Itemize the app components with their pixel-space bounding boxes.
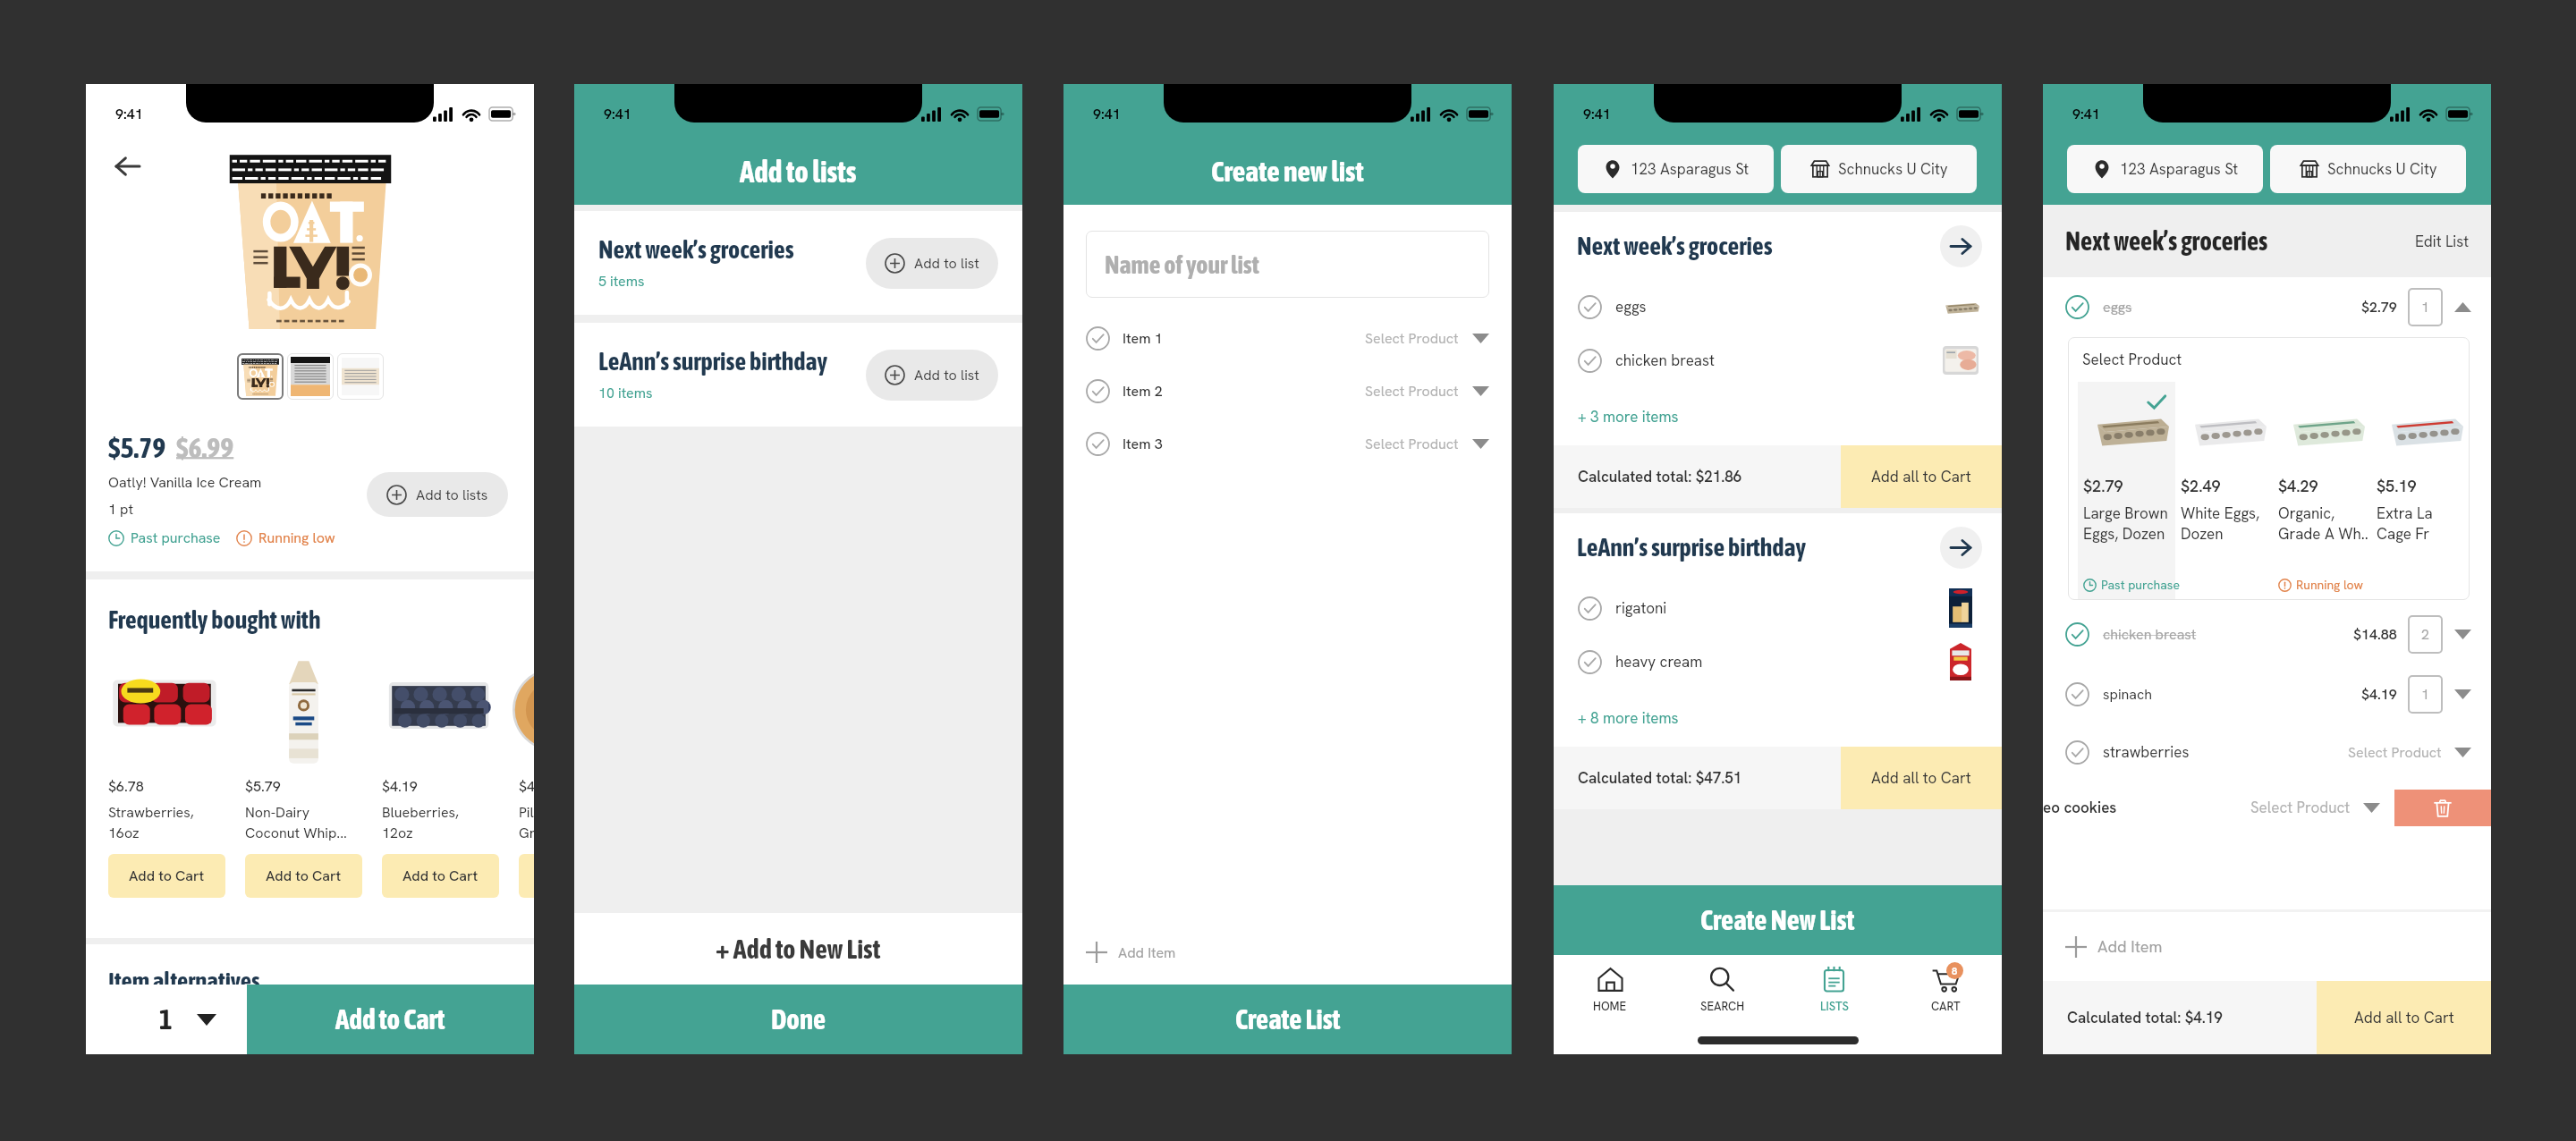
button[interactable]: Quantity [86,985,247,1054]
staticText: 1 pt [108,500,134,519]
staticText: Next week’s groceries [2065,226,2415,256]
staticText: Blueberries, [382,803,459,822]
button[interactable]: spinach [2065,664,2471,724]
button[interactable]: Create List [1063,985,1512,1054]
staticText: Calculated total: $47.51 [1578,768,1742,788]
staticText: $2.79 [2361,298,2397,317]
staticText: chicken breast [2103,625,2353,644]
staticText: 8 [1952,965,1958,977]
button[interactable]: Back [106,145,148,188]
staticText: Create new list [1211,155,1364,188]
staticText: Calculated total: $21.86 [1578,467,1742,486]
button[interactable]: + Add to New List [574,913,1022,985]
button[interactable]: eggs [2065,277,2471,337]
button[interactable]: Delete [2394,790,2491,826]
staticText: 9:41 [604,105,631,123]
staticText: Frequently bought with [108,605,321,634]
staticText: Schnucks U City [1838,159,1948,179]
button[interactable]: Open list [1940,527,1982,569]
staticText: eo cookies [2043,798,2117,817]
button[interactable]: $5.19 [2371,382,2470,600]
staticText: $6.78 [108,777,144,796]
button[interactable]: Name of your list [1086,231,1489,298]
staticText: Extra La [2377,503,2433,523]
staticText: 9:41 [2072,105,2100,123]
staticText: Strawberries, [108,803,194,822]
staticText: 1 [2421,685,2429,704]
button[interactable]: Nutrition label [337,353,384,400]
button[interactable]: heavy cream [1578,635,1980,689]
button[interactable]: Add to list [866,238,998,289]
staticText: $14.88 [2353,625,2397,644]
button[interactable]: + 8 more items [1578,708,1679,728]
button[interactable]: Add to list [866,350,998,401]
staticText: Name of your list [1105,250,1259,279]
button[interactable]: Add Item [2043,912,2491,981]
button[interactable]: 123 Asparagus St [1578,145,1774,193]
staticText: Create New List [1700,904,1855,936]
staticText: Cage Fr [2377,524,2430,544]
button[interactable]: chicken breast [1578,334,1980,387]
button[interactable]: strawberries [2065,724,2471,780]
button[interactable]: Add to Cart [382,854,499,898]
staticText: HOME [1593,999,1627,1014]
staticText: $4.19 [2361,685,2397,704]
button[interactable]: chicken breast [2065,604,2471,664]
button[interactable]: Add all to Cart [1841,747,2002,809]
button[interactable]: Create New List [1554,885,2002,955]
staticText: 123 Asparagus St [1631,159,1750,179]
button[interactable]: rigatoni [1578,581,1980,635]
button[interactable]: Add Item [1063,920,1512,985]
button[interactable]: Schnucks U City [1781,145,1977,193]
staticText: Large Brown [2083,503,2168,523]
button[interactable]: Edit List [2415,232,2470,251]
staticText: Running low [258,528,335,547]
staticText: CART [1931,999,1961,1014]
button[interactable]: Product photo 2 [287,353,334,400]
staticText: Past purchase [2101,577,2180,593]
button[interactable]: SEARCH [1666,955,1778,1025]
button[interactable]: Add all to Cart [1841,445,2002,508]
button[interactable]: 8 [1890,955,2002,1025]
staticText: Calculated total: $4.19 [2067,1008,2223,1027]
button[interactable]: 123 Asparagus St [2067,145,2263,193]
button[interactable]: Open list [1940,225,1982,267]
staticText: Grade A Wh.. [2278,524,2368,544]
staticText: rigatoni [1615,598,1941,618]
staticText: Done [771,1003,826,1035]
staticText: 9:41 [1583,105,1611,123]
button[interactable]: Add all to Cart [2317,981,2491,1054]
staticText: $2.49 [2181,476,2221,496]
button[interactable]: Item 3 [1063,418,1512,470]
button[interactable]: Add to Cart [245,854,362,898]
button[interactable]: HOME [1554,955,1666,1025]
button[interactable]: Item 1 [1063,312,1512,365]
button[interactable]: $2.49 [2175,382,2273,600]
staticText: Add to lists [416,486,488,504]
button[interactable]: Schnucks U City [2270,145,2466,193]
button[interactable]: eggs [1578,280,1980,334]
button[interactable]: Done [574,985,1022,1054]
staticText: Add Item [2097,936,2163,957]
staticText: White Eggs, [2181,503,2260,523]
staticText: $5.19 [2377,476,2417,496]
button[interactable]: Add to Cart [519,854,534,898]
button[interactable]: $2.79 [2078,382,2175,600]
button[interactable]: Add to Cart [247,985,534,1054]
button[interactable]: Add to Cart [108,854,225,898]
staticText: Add to list [914,366,979,385]
staticText: $2.79 [2083,476,2123,496]
button[interactable]: + 3 more items [1578,407,1679,427]
button[interactable]: $4.29 [2273,382,2371,600]
staticText: Organic, [2278,503,2335,523]
button[interactable]: Product photo 1 [237,353,284,400]
staticText: Select Product [2348,743,2442,762]
staticText: Oatly! Vanilla Ice Cream [108,473,262,492]
button[interactable]: Add to lists [367,472,508,517]
staticText: $4.99 [519,777,534,796]
staticText: 9:41 [115,105,143,123]
button[interactable]: Item 2 [1063,365,1512,418]
staticText: Non-Dairy [245,803,310,822]
staticText: 9:41 [1093,105,1121,123]
button[interactable]: LISTS [1778,955,1890,1025]
